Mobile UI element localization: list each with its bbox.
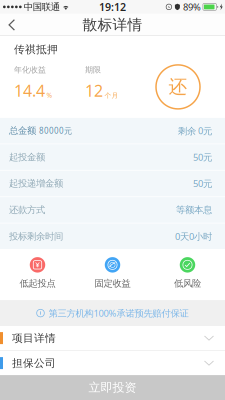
staticText: 第三方机构100%承诺预先赔付保证 bbox=[48, 307, 188, 319]
button[interactable]: 还款 bbox=[156, 65, 200, 109]
staticText: 固定收益 bbox=[94, 278, 130, 289]
staticText: 还款方式 bbox=[9, 204, 45, 216]
staticText: 19:12 bbox=[99, 0, 126, 14]
staticText: 14.4 bbox=[14, 80, 45, 101]
button[interactable]: 担保公司 bbox=[0, 351, 225, 375]
staticText: 起投金额 bbox=[9, 151, 45, 163]
staticText: 项目详情 bbox=[12, 331, 56, 345]
staticText: 等额本息 bbox=[176, 204, 212, 216]
staticText: 年化收益 bbox=[14, 65, 46, 75]
staticText: 低风险 bbox=[174, 278, 201, 289]
staticText: 89% bbox=[183, 1, 201, 13]
staticText: 80000元 bbox=[39, 125, 72, 136]
staticText: 个月 bbox=[104, 91, 118, 100]
staticText: 剩余 0元 bbox=[178, 124, 212, 137]
staticText: 传祺抵押 bbox=[14, 43, 58, 56]
staticText: 12 bbox=[85, 80, 103, 101]
button[interactable]: 立即投资 bbox=[0, 375, 225, 400]
staticText: 中国联通 bbox=[24, 1, 60, 13]
staticText: 低起投点 bbox=[19, 278, 55, 289]
staticText: 散标详情 bbox=[82, 16, 142, 34]
staticText: 50元 bbox=[193, 177, 212, 190]
staticText: 担保公司 bbox=[12, 356, 56, 370]
button[interactable]: 项目详情 bbox=[0, 326, 225, 350]
staticText: 立即投资 bbox=[88, 380, 136, 395]
staticText: 0天0小时 bbox=[175, 230, 212, 242]
staticText: 总金额 bbox=[9, 125, 36, 136]
staticText: 50元 bbox=[193, 151, 212, 163]
staticText: 还 bbox=[168, 75, 187, 98]
staticText: 期限 bbox=[85, 65, 101, 75]
staticText: 投标剩余时间 bbox=[9, 231, 63, 242]
button[interactable]: 返回 bbox=[0, 14, 25, 36]
staticText: % bbox=[46, 91, 52, 100]
staticText: 起投递增金额 bbox=[9, 178, 63, 189]
